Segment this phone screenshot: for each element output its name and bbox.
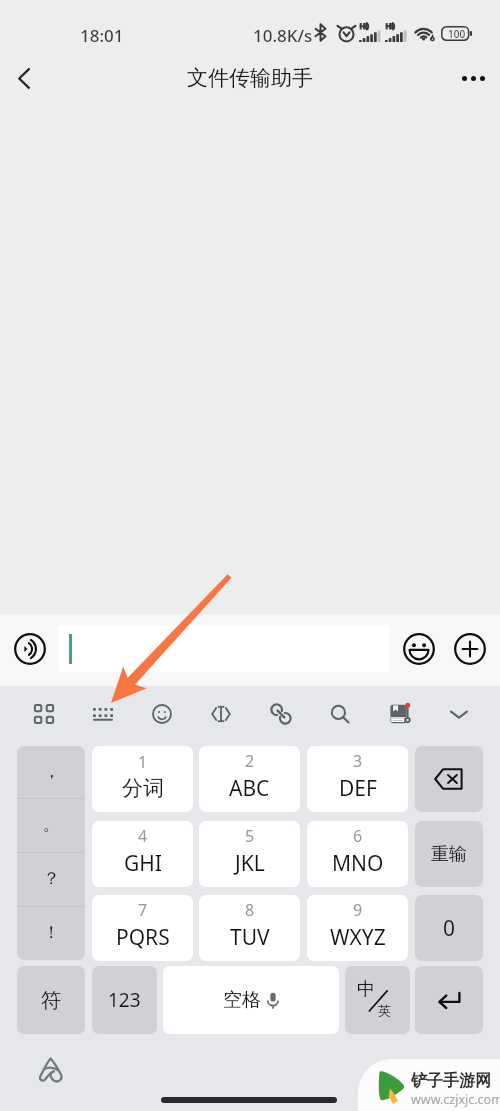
staticText: DEF — [339, 774, 377, 803]
button[interactable]: 中 — [345, 966, 410, 1034]
button[interactable]: Keyboard — [85, 696, 121, 732]
staticText: 0 — [443, 914, 456, 943]
staticText: ？ — [43, 868, 60, 889]
staticText: 123 — [108, 987, 141, 1013]
button[interactable]: Search — [322, 696, 358, 732]
button[interactable]: 9 — [307, 895, 408, 961]
staticText: 重输 — [431, 843, 467, 866]
staticText: 铲子手游网 — [411, 1071, 491, 1091]
button[interactable]: Voice input — [14, 633, 46, 665]
button[interactable]: 123 — [92, 966, 157, 1034]
button[interactable]: 1 — [92, 746, 193, 812]
staticText: 6 — [353, 825, 363, 847]
staticText: 10.8K/s — [253, 24, 313, 47]
staticText: 18:01 — [80, 24, 124, 47]
button[interactable] — [58, 625, 389, 672]
button[interactable]: Add — [454, 633, 486, 665]
button[interactable]: 7 — [92, 895, 193, 961]
staticText: PQRS — [116, 923, 170, 952]
button[interactable]: Back — [1, 52, 47, 104]
button[interactable]: Clipboard — [263, 696, 299, 732]
staticText: ！ — [43, 922, 60, 943]
button[interactable]: More options — [448, 52, 500, 104]
staticText: 8 — [245, 899, 255, 921]
staticText: 2 — [245, 750, 255, 772]
staticText: 3 — [353, 750, 363, 772]
button[interactable]: 5 — [199, 821, 300, 887]
button[interactable]: Dictionary — [382, 696, 418, 732]
button[interactable]: ， — [17, 746, 85, 798]
button[interactable]: Hide keyboard — [441, 696, 477, 732]
button[interactable]: 符 — [17, 966, 85, 1034]
staticText: 1 — [138, 751, 148, 773]
staticText: 。 — [43, 814, 60, 835]
staticText: 空格 — [223, 988, 261, 1012]
staticText: 符 — [41, 988, 61, 1013]
button[interactable]: ！ — [17, 907, 85, 960]
staticText: JKL — [235, 849, 265, 878]
button[interactable]: Panel — [26, 696, 62, 732]
staticText: GHI — [124, 849, 162, 878]
staticText: TUV — [230, 923, 270, 952]
button[interactable]: 2 — [199, 746, 300, 812]
button[interactable]: 0 — [415, 895, 483, 961]
staticText: 文件传输助手 — [187, 65, 313, 91]
button[interactable]: ？ — [17, 853, 85, 906]
staticText: 4 — [138, 825, 148, 847]
staticText: MNO — [332, 849, 384, 878]
button[interactable]: Enter — [415, 966, 483, 1034]
button[interactable]: 空格 — [163, 966, 339, 1034]
button[interactable]: 重输 — [415, 821, 483, 887]
staticText: www.czjxjc.com — [411, 1091, 500, 1108]
button[interactable]: Emoji — [403, 633, 435, 665]
staticText: 7 — [138, 899, 148, 921]
button[interactable]: 6 — [307, 821, 408, 887]
staticText: 英 — [378, 1002, 391, 1018]
staticText: 5 — [245, 825, 255, 847]
button[interactable]: Sogou input — [37, 1057, 63, 1082]
button[interactable]: Backspace — [415, 746, 483, 812]
staticText: 9 — [353, 899, 363, 921]
button[interactable]: 4 — [92, 821, 193, 887]
button[interactable]: 3 — [307, 746, 408, 812]
staticText: 100 — [448, 27, 466, 41]
button[interactable]: 。 — [17, 799, 85, 852]
button[interactable]: Cursor — [203, 696, 239, 732]
staticText: ABC — [229, 774, 270, 803]
button[interactable]: Emoticon — [144, 696, 180, 732]
staticText: ， — [43, 761, 60, 782]
button[interactable]: 8 — [199, 895, 300, 961]
staticText: 中 — [357, 978, 375, 1001]
staticText: 分词 — [122, 775, 164, 801]
staticText: WXYZ — [330, 923, 386, 952]
